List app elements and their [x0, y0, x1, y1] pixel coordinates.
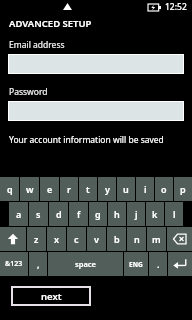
button[interactable]: l: [165, 202, 183, 226]
staticText: c: [74, 233, 79, 245]
button[interactable]: t: [79, 177, 97, 201]
staticText: Email address: [9, 39, 65, 51]
staticText: h: [114, 208, 120, 220]
staticText: 12:52: [165, 1, 187, 13]
button[interactable]: d: [49, 202, 68, 226]
button[interactable]: next: [11, 286, 91, 306]
staticText: f: [77, 208, 81, 220]
staticText: p: [180, 183, 186, 195]
staticText: a: [16, 208, 22, 220]
button[interactable]: n: [127, 227, 146, 251]
button[interactable]: ,: [29, 252, 47, 276]
staticText: l: [173, 208, 176, 220]
button[interactable]: g: [89, 202, 107, 226]
staticText: d: [56, 208, 62, 220]
staticText: ADVANCED SETUP: [9, 17, 92, 30]
button[interactable]: Backspace: [167, 227, 192, 251]
button[interactable]: i: [136, 177, 154, 201]
staticText: g: [95, 208, 101, 220]
button[interactable]: k: [146, 202, 164, 226]
staticText: m: [152, 233, 161, 245]
button[interactable]: b: [107, 227, 126, 251]
staticText: e: [47, 183, 53, 195]
button[interactable]: ENG: [124, 252, 148, 276]
button[interactable]: space: [48, 252, 123, 276]
staticText: u: [123, 183, 129, 195]
staticText: b: [114, 233, 120, 245]
staticText: Password: [9, 86, 48, 98]
staticText: y: [105, 183, 110, 195]
button[interactable]: w: [20, 177, 39, 201]
button[interactable]: m: [147, 227, 166, 251]
staticText: t: [86, 183, 90, 195]
staticText: x: [54, 233, 60, 245]
staticText: w: [26, 183, 34, 195]
button[interactable]: v: [87, 227, 106, 251]
staticText: q: [7, 183, 13, 195]
button[interactable]: y: [98, 177, 116, 201]
button[interactable]: [8, 101, 184, 121]
button[interactable]: [8, 54, 184, 74]
button[interactable]: .: [149, 252, 167, 276]
button[interactable]: a: [9, 202, 28, 226]
button[interactable]: q: [0, 177, 19, 201]
button[interactable]: u: [117, 177, 135, 201]
button[interactable]: o: [155, 177, 173, 201]
button[interactable]: c: [67, 227, 86, 251]
staticText: s: [36, 208, 41, 220]
button[interactable]: f: [69, 202, 88, 226]
button[interactable]: x: [47, 227, 66, 251]
button[interactable]: j: [127, 202, 145, 226]
button[interactable]: p: [174, 177, 192, 201]
staticText: .: [157, 258, 160, 270]
staticText: r: [67, 183, 71, 195]
staticText: next: [41, 290, 62, 303]
button[interactable]: &123: [0, 252, 28, 276]
button[interactable]: e: [40, 177, 59, 201]
staticText: n: [134, 233, 140, 245]
staticText: ENG: [129, 260, 143, 269]
button[interactable]: Shift: [0, 227, 26, 251]
button[interactable]: z: [27, 227, 46, 251]
staticText: i: [144, 183, 147, 195]
staticText: o: [161, 183, 167, 195]
staticText: Your account information will be saved: [9, 134, 164, 146]
staticText: k: [152, 208, 158, 220]
button[interactable]: s: [29, 202, 48, 226]
button[interactable]: Enter: [168, 252, 192, 276]
staticText: v: [94, 233, 99, 245]
staticText: &123: [5, 259, 23, 269]
button[interactable]: r: [60, 177, 78, 201]
button[interactable]: h: [108, 202, 126, 226]
staticText: j: [135, 208, 138, 220]
staticText: z: [34, 233, 39, 245]
staticText: ,: [37, 258, 40, 270]
staticText: space: [75, 259, 96, 269]
